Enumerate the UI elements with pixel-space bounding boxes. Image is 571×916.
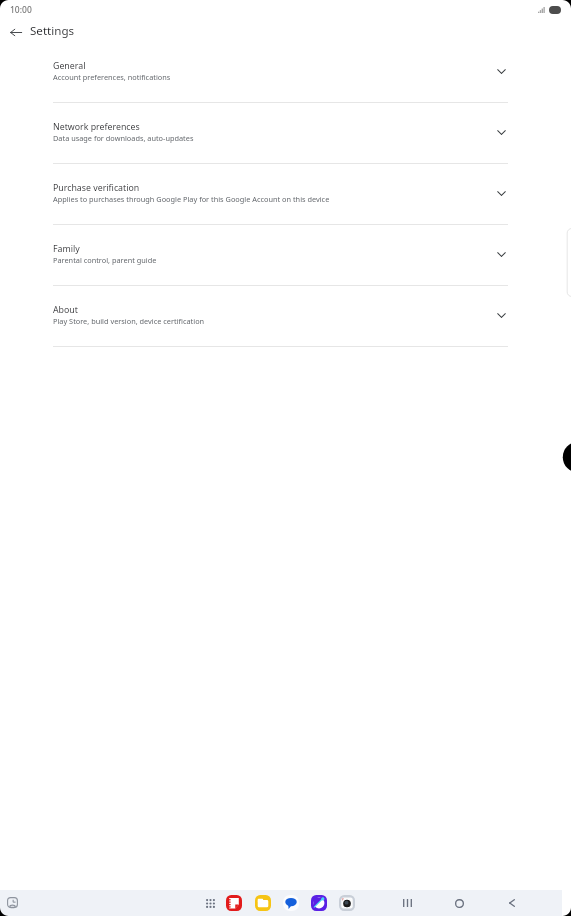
staticText: Settings (30, 23, 75, 39)
button[interactable]: Internet (311, 895, 327, 911)
staticText: Account preferences, notifications (53, 72, 171, 82)
staticText: Family (53, 243, 80, 255)
staticText: Parental control, parent guide (53, 255, 157, 265)
button[interactable]: My Files (255, 895, 271, 911)
staticText: General (53, 60, 86, 72)
button[interactable]: Purchase verification (0, 164, 571, 225)
staticText: Data usage for downloads, auto-updates (53, 133, 194, 143)
staticText: Play Store, build version, device certif… (53, 316, 205, 326)
button[interactable]: Family (0, 225, 571, 286)
button[interactable]: Network preferences (0, 103, 571, 164)
button[interactable]: Camera (339, 895, 355, 911)
button[interactable]: Back (499, 890, 525, 916)
button[interactable]: All apps (202, 895, 218, 911)
button[interactable]: Home (446, 890, 472, 916)
button[interactable]: Recent apps panel (4, 894, 21, 911)
button[interactable]: Messages (283, 895, 299, 911)
button[interactable]: Samsung Notes (226, 895, 242, 911)
button[interactable]: About (0, 286, 571, 347)
button[interactable]: Recent apps (394, 890, 420, 916)
button[interactable]: Navigate up (4, 24, 28, 41)
staticText: About (53, 304, 78, 316)
staticText: 10:00 (10, 4, 32, 16)
button[interactable]: General (0, 42, 571, 103)
staticText: Purchase verification (53, 182, 140, 194)
staticText: Network preferences (53, 121, 140, 133)
staticText: Applies to purchases through Google Play… (53, 194, 330, 204)
